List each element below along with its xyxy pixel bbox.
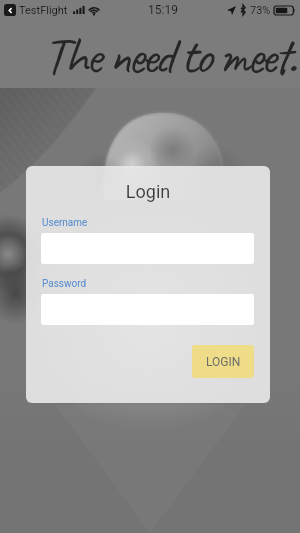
staticText: Password — [42, 278, 87, 290]
staticText: 73% — [250, 4, 271, 17]
staticText: TestFlight — [19, 4, 68, 17]
staticText: 15:19 — [148, 3, 178, 17]
staticText: Login — [26, 181, 270, 202]
staticText: Username — [42, 217, 88, 229]
button[interactable]: LOGIN — [192, 345, 254, 378]
button[interactable]: Back to TestFlight — [4, 4, 16, 16]
staticText: The need to meet. — [43, 23, 294, 89]
staticText: LOGIN — [206, 355, 241, 369]
